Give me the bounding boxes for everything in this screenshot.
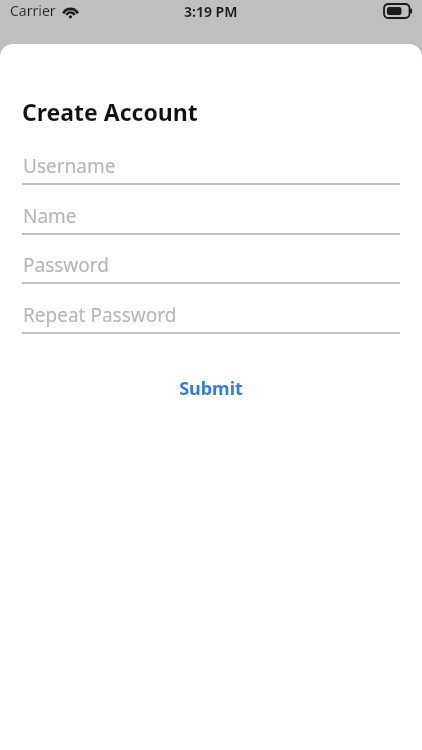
staticText: 3:19 PM [184, 2, 238, 21]
button[interactable]: Name [22, 198, 400, 236]
button[interactable]: Username [22, 148, 400, 186]
staticText: Username [23, 153, 116, 179]
other: Battery [384, 4, 413, 18]
button[interactable]: Submit [0, 369, 422, 407]
staticText: Submit [179, 376, 243, 401]
button[interactable]: Repeat Password [22, 297, 400, 335]
staticText: Password [23, 252, 109, 278]
staticText: Repeat Password [23, 302, 177, 328]
staticText: Carrier [10, 1, 56, 20]
staticText: Name [23, 203, 77, 229]
button[interactable]: Password [22, 247, 400, 285]
staticText: Create Account [22, 96, 198, 127]
other: Wi-Fi signal [61, 4, 80, 20]
